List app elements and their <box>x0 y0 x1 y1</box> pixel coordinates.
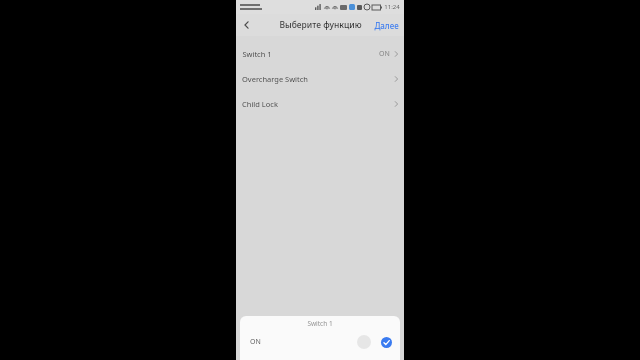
staticText: Overcharge Switch <box>242 74 308 84</box>
other: Selected <box>381 337 392 348</box>
staticText: Switch 1 <box>242 49 272 59</box>
button[interactable]: Switch 1 <box>236 41 404 66</box>
button[interactable]: Child Lock <box>236 91 404 116</box>
staticText: Выберите функцию <box>279 19 362 31</box>
button[interactable]: Back <box>236 14 256 36</box>
staticText: Switch 1 <box>307 319 333 328</box>
button[interactable]: Далее <box>374 20 399 31</box>
staticText: Далее <box>374 20 399 31</box>
staticText: ON <box>250 337 261 347</box>
button[interactable]: ON <box>240 331 400 353</box>
button[interactable]: Overcharge Switch <box>236 66 404 91</box>
staticText: ON <box>379 49 390 59</box>
staticText: 11:24 <box>384 3 400 11</box>
staticText: Child Lock <box>242 99 278 109</box>
